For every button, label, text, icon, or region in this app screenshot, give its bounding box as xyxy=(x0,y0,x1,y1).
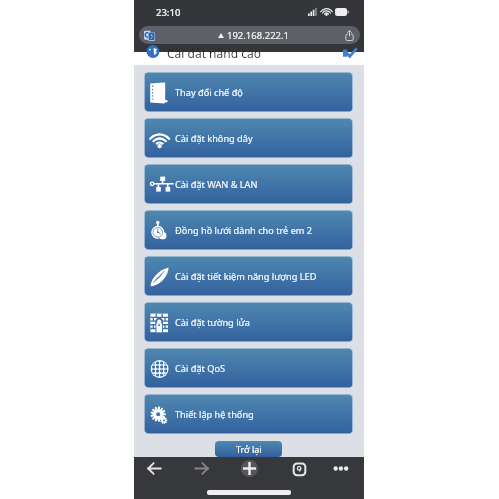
staticText: Cài đặt tường lửa xyxy=(175,316,250,329)
button[interactable]: Cài đặt tiết kiệm năng lượng LED xyxy=(144,256,353,296)
button[interactable]: Thiết lập hệ thống xyxy=(144,394,353,434)
staticText: Cài đặt nâng cao xyxy=(167,45,261,58)
button[interactable]: New tab xyxy=(239,458,260,479)
staticText: Thiết lập hệ thống xyxy=(175,408,254,421)
staticText: Thay đổi chế độ xyxy=(175,86,243,99)
button[interactable]: Translate page xyxy=(144,30,155,41)
button[interactable]: Forward xyxy=(191,458,212,479)
staticText: Cài đặt WAN & LAN xyxy=(175,178,258,191)
button[interactable]: Cài đặt QoS xyxy=(144,348,353,388)
staticText: Cài đặt tiết kiệm năng lượng LED xyxy=(175,270,317,283)
button[interactable]: Tabs xyxy=(289,458,310,479)
staticText: Trở lại xyxy=(236,443,262,455)
button[interactable]: More xyxy=(332,458,353,479)
button[interactable]: Cài đặt tường lửa xyxy=(144,302,353,342)
button[interactable]: Trở lại xyxy=(215,441,282,457)
staticText: Đồng hồ lưới dành cho trẻ em 2 xyxy=(175,224,313,237)
staticText: 192.168.222.1 xyxy=(227,29,289,42)
staticText: Cài đặt không dây xyxy=(175,132,253,145)
button[interactable]: Share xyxy=(344,30,355,41)
staticText: 23:10 xyxy=(156,6,181,19)
staticText: Cài đặt QoS xyxy=(175,362,226,375)
button[interactable]: Cài đặt không dây xyxy=(144,118,353,158)
button[interactable]: Thay đổi chế độ xyxy=(144,72,353,112)
button[interactable]: Đồng hồ lưới dành cho trẻ em 2 xyxy=(144,210,353,250)
button[interactable]: Cài đặt WAN & LAN xyxy=(144,164,353,204)
button[interactable]: Back xyxy=(144,458,165,479)
button[interactable]: 192.168.222.1 xyxy=(139,26,360,44)
